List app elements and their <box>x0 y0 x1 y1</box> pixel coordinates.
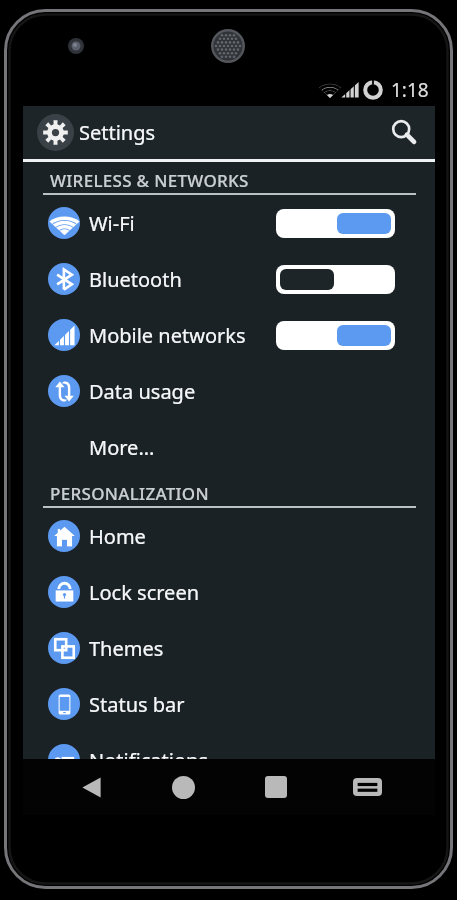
button[interactable]: Mobile networks <box>23 307 435 363</box>
button[interactable]: Settings <box>37 114 74 151</box>
button[interactable]: Home <box>23 508 435 564</box>
button[interactable]: Notifications <box>23 732 435 759</box>
button[interactable]: On <box>276 209 395 238</box>
button[interactable]: Wi-Fi <box>23 195 435 251</box>
staticText: PERSONALIZATION <box>50 482 209 504</box>
button[interactable]: Themes <box>23 620 435 676</box>
staticText: Themes <box>89 635 164 662</box>
button[interactable]: More... <box>23 419 435 475</box>
button[interactable]: Off <box>276 265 395 294</box>
staticText: Status bar <box>89 691 185 718</box>
button[interactable]: Data usage <box>23 363 435 419</box>
button[interactable]: Bluetooth <box>23 251 435 307</box>
staticText: More... <box>89 434 155 461</box>
button[interactable]: Lock screen <box>23 564 435 620</box>
staticText: Home <box>89 523 146 550</box>
staticText: 1:18 <box>391 77 429 103</box>
staticText: Settings <box>79 119 156 146</box>
button[interactable]: Home <box>160 759 206 815</box>
staticText: Data usage <box>89 378 196 405</box>
button[interactable]: Back <box>68 759 114 815</box>
staticText: Notifications <box>89 747 208 759</box>
button[interactable]: On <box>276 321 395 350</box>
staticText: Bluetooth <box>89 266 182 293</box>
button[interactable]: Menu <box>344 759 390 815</box>
staticText: Mobile networks <box>89 322 246 349</box>
button[interactable]: Status bar <box>23 676 435 732</box>
staticText: Wi-Fi <box>89 210 135 237</box>
button[interactable]: Search <box>377 106 430 159</box>
button[interactable]: Recent apps <box>253 759 299 815</box>
staticText: WIRELESS & NETWORKS <box>50 169 249 191</box>
staticText: Lock screen <box>89 579 200 606</box>
